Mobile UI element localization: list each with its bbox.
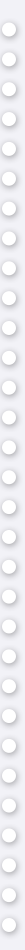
button[interactable]: Item (2, 799, 16, 813)
button[interactable]: Item (2, 470, 16, 484)
button[interactable]: Item (2, 411, 16, 425)
button[interactable]: Item (2, 52, 16, 66)
button[interactable]: Item (2, 172, 16, 186)
button[interactable]: Item (2, 440, 16, 454)
button[interactable]: Item (2, 142, 16, 156)
button[interactable]: Item (2, 112, 16, 126)
button[interactable]: Item (2, 530, 16, 544)
button[interactable]: Item (2, 202, 16, 216)
button[interactable]: Item (2, 500, 16, 514)
button[interactable]: Item (2, 22, 16, 36)
button[interactable]: Item (2, 590, 16, 604)
button[interactable]: Item (2, 769, 16, 783)
button[interactable]: Item (2, 679, 16, 693)
button[interactable]: Item (2, 82, 16, 96)
button[interactable]: Item (2, 351, 16, 365)
button[interactable]: Item (2, 321, 16, 335)
button[interactable]: Item (2, 649, 16, 663)
button[interactable]: Item (2, 709, 16, 723)
button[interactable]: Item (2, 918, 16, 932)
button[interactable]: Item (2, 888, 16, 902)
button[interactable]: Item (2, 858, 16, 872)
button[interactable]: Item (2, 261, 16, 275)
button[interactable]: Item (2, 231, 16, 245)
button[interactable]: Item (2, 828, 16, 842)
button[interactable]: Item (2, 291, 16, 305)
button[interactable]: Item (2, 619, 16, 633)
button[interactable]: Item (2, 560, 16, 574)
button[interactable]: Item (2, 739, 16, 753)
button[interactable]: Item (2, 381, 16, 395)
